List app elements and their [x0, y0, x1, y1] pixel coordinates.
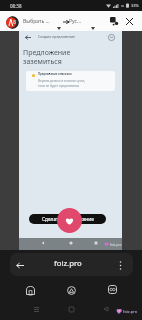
- staticText: foiz.pro: [54, 258, 82, 269]
- staticText: Рус...: [69, 18, 82, 25]
- button[interactable]: Back: [22, 31, 34, 43]
- staticText: Создать предложение: [38, 34, 76, 39]
- staticText: Сделать предложение: [42, 216, 94, 223]
- staticText: Предложение заземиться: [23, 48, 71, 66]
- button[interactable]: Back: [14, 259, 26, 271]
- button[interactable]: Home: [21, 281, 39, 299]
- button[interactable]: Recent apps: [93, 240, 99, 246]
- staticText: Б: [13, 19, 17, 26]
- button[interactable]: Assistant: [62, 281, 80, 299]
- button[interactable]: More options: [114, 259, 126, 271]
- staticText: Выбрать ...: [23, 18, 50, 25]
- button[interactable]: Recent apps: [64, 302, 78, 316]
- button[interactable]: Translate settings: [108, 15, 120, 27]
- button[interactable]: Рус...: [69, 13, 96, 29]
- button[interactable]: Сделать предложение: [29, 214, 106, 224]
- staticText: Предложение отменено: [38, 72, 72, 76]
- staticText: 33%: [131, 3, 139, 8]
- button[interactable]: Browser menu: [6, 16, 19, 29]
- button[interactable]: Menu: [29, 302, 43, 316]
- button[interactable]: Home: [68, 240, 74, 246]
- button[interactable]: Like: [57, 208, 82, 233]
- staticText: foiz.pro: [110, 243, 122, 247]
- button[interactable]: Close translation bar: [123, 15, 135, 27]
- button[interactable]: Back: [40, 240, 46, 246]
- button[interactable]: Tabs: [103, 280, 121, 298]
- button[interactable]: Help: [105, 31, 117, 43]
- button[interactable]: Выбрать ...: [21, 13, 61, 29]
- button[interactable]: Back: [10, 253, 133, 276]
- staticText: foiz.pro: [123, 309, 138, 314]
- staticText: 08:38: [10, 3, 22, 9]
- button[interactable]: Предложение отменено: [26, 71, 115, 91]
- button[interactable]: Back: [99, 302, 113, 316]
- staticText: Вернем деньги в течение суток, если не б…: [38, 79, 86, 87]
